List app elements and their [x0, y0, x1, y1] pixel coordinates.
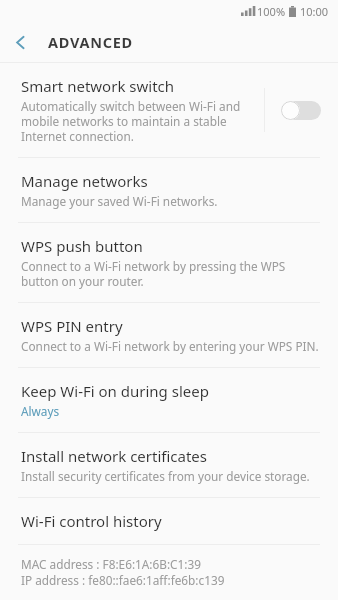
staticText: Manage networks	[21, 171, 148, 191]
staticText: ADVANCED	[48, 32, 133, 52]
staticText: Install security certificates from your …	[21, 468, 310, 484]
button[interactable]: Manage networks	[0, 158, 338, 222]
staticText: Wi-Fi control history	[21, 511, 162, 531]
staticText: Connect to a Wi-Fi network by pressing t…	[21, 258, 324, 289]
staticText: WPS PIN entry	[21, 316, 123, 336]
staticText: 10:00	[300, 4, 329, 19]
staticText: Automatically switch between Wi-Fi and m…	[21, 98, 250, 144]
button[interactable]: Smart network switch toggle	[281, 101, 321, 120]
button[interactable]: Smart network switch	[0, 63, 338, 157]
button[interactable]: WPS push button	[0, 223, 338, 302]
staticText: WPS push button	[21, 236, 143, 256]
staticText: MAC address : F8:E6:1A:6B:C1:39	[21, 556, 201, 572]
staticText: Connect to a Wi-Fi network by entering y…	[21, 338, 319, 354]
button[interactable]: Install network certificates	[0, 433, 338, 497]
staticText: IP address : fe80::fae6:1aff:fe6b:c139	[21, 572, 225, 588]
button[interactable]: Keep Wi-Fi on during sleep	[0, 368, 338, 432]
staticText: Keep Wi-Fi on during sleep	[21, 381, 209, 401]
staticText: Install network certificates	[21, 446, 207, 466]
staticText: Always	[21, 403, 60, 419]
button[interactable]: Wi-Fi control history	[0, 498, 338, 544]
staticText: Manage your saved Wi-Fi networks.	[21, 193, 218, 209]
button[interactable]: WPS PIN entry	[0, 303, 338, 367]
button[interactable]: Back	[0, 22, 40, 62]
staticText: Smart network switch	[21, 76, 175, 96]
staticText: 100%	[257, 4, 286, 19]
